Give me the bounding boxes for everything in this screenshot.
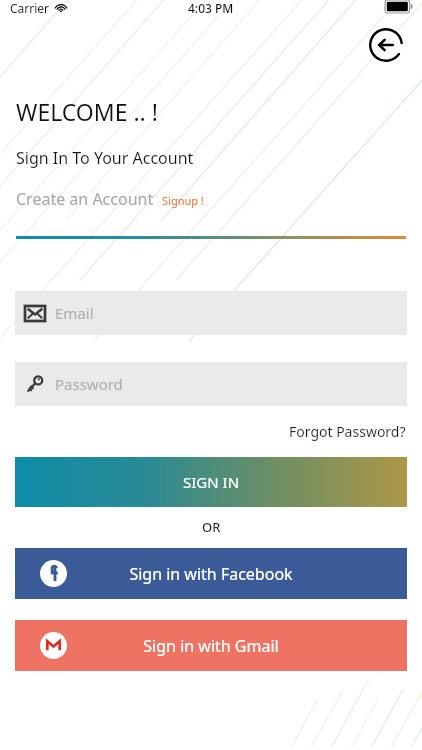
staticText: Sign in with Facebook xyxy=(129,563,293,585)
button[interactable]: Sign in with Facebook xyxy=(15,548,407,599)
staticText: Email xyxy=(55,303,94,323)
button[interactable]: Forgot Password? xyxy=(289,422,406,441)
staticText: 4:03 PM xyxy=(188,0,234,16)
staticText: Sign in with Gmail xyxy=(143,635,279,657)
staticText: Sign In To Your Account xyxy=(16,147,194,169)
button[interactable]: Signup ! xyxy=(162,195,204,210)
staticText: Signup ! xyxy=(162,193,204,208)
staticText: WELCOME .. ! xyxy=(16,96,158,127)
button[interactable]: Password xyxy=(15,362,407,406)
staticText: Forgot Password? xyxy=(289,422,406,441)
staticText: Password xyxy=(55,374,123,394)
staticText: SIGN IN xyxy=(183,472,240,492)
button[interactable]: Sign in with Gmail xyxy=(15,620,407,671)
staticText: Create an Account xyxy=(16,188,154,210)
staticText: OR xyxy=(202,518,221,536)
button[interactable]: Email xyxy=(15,291,407,335)
button[interactable]: Back xyxy=(366,25,406,65)
button[interactable]: SIGN IN xyxy=(15,457,407,507)
staticText: Carrier xyxy=(10,0,50,16)
